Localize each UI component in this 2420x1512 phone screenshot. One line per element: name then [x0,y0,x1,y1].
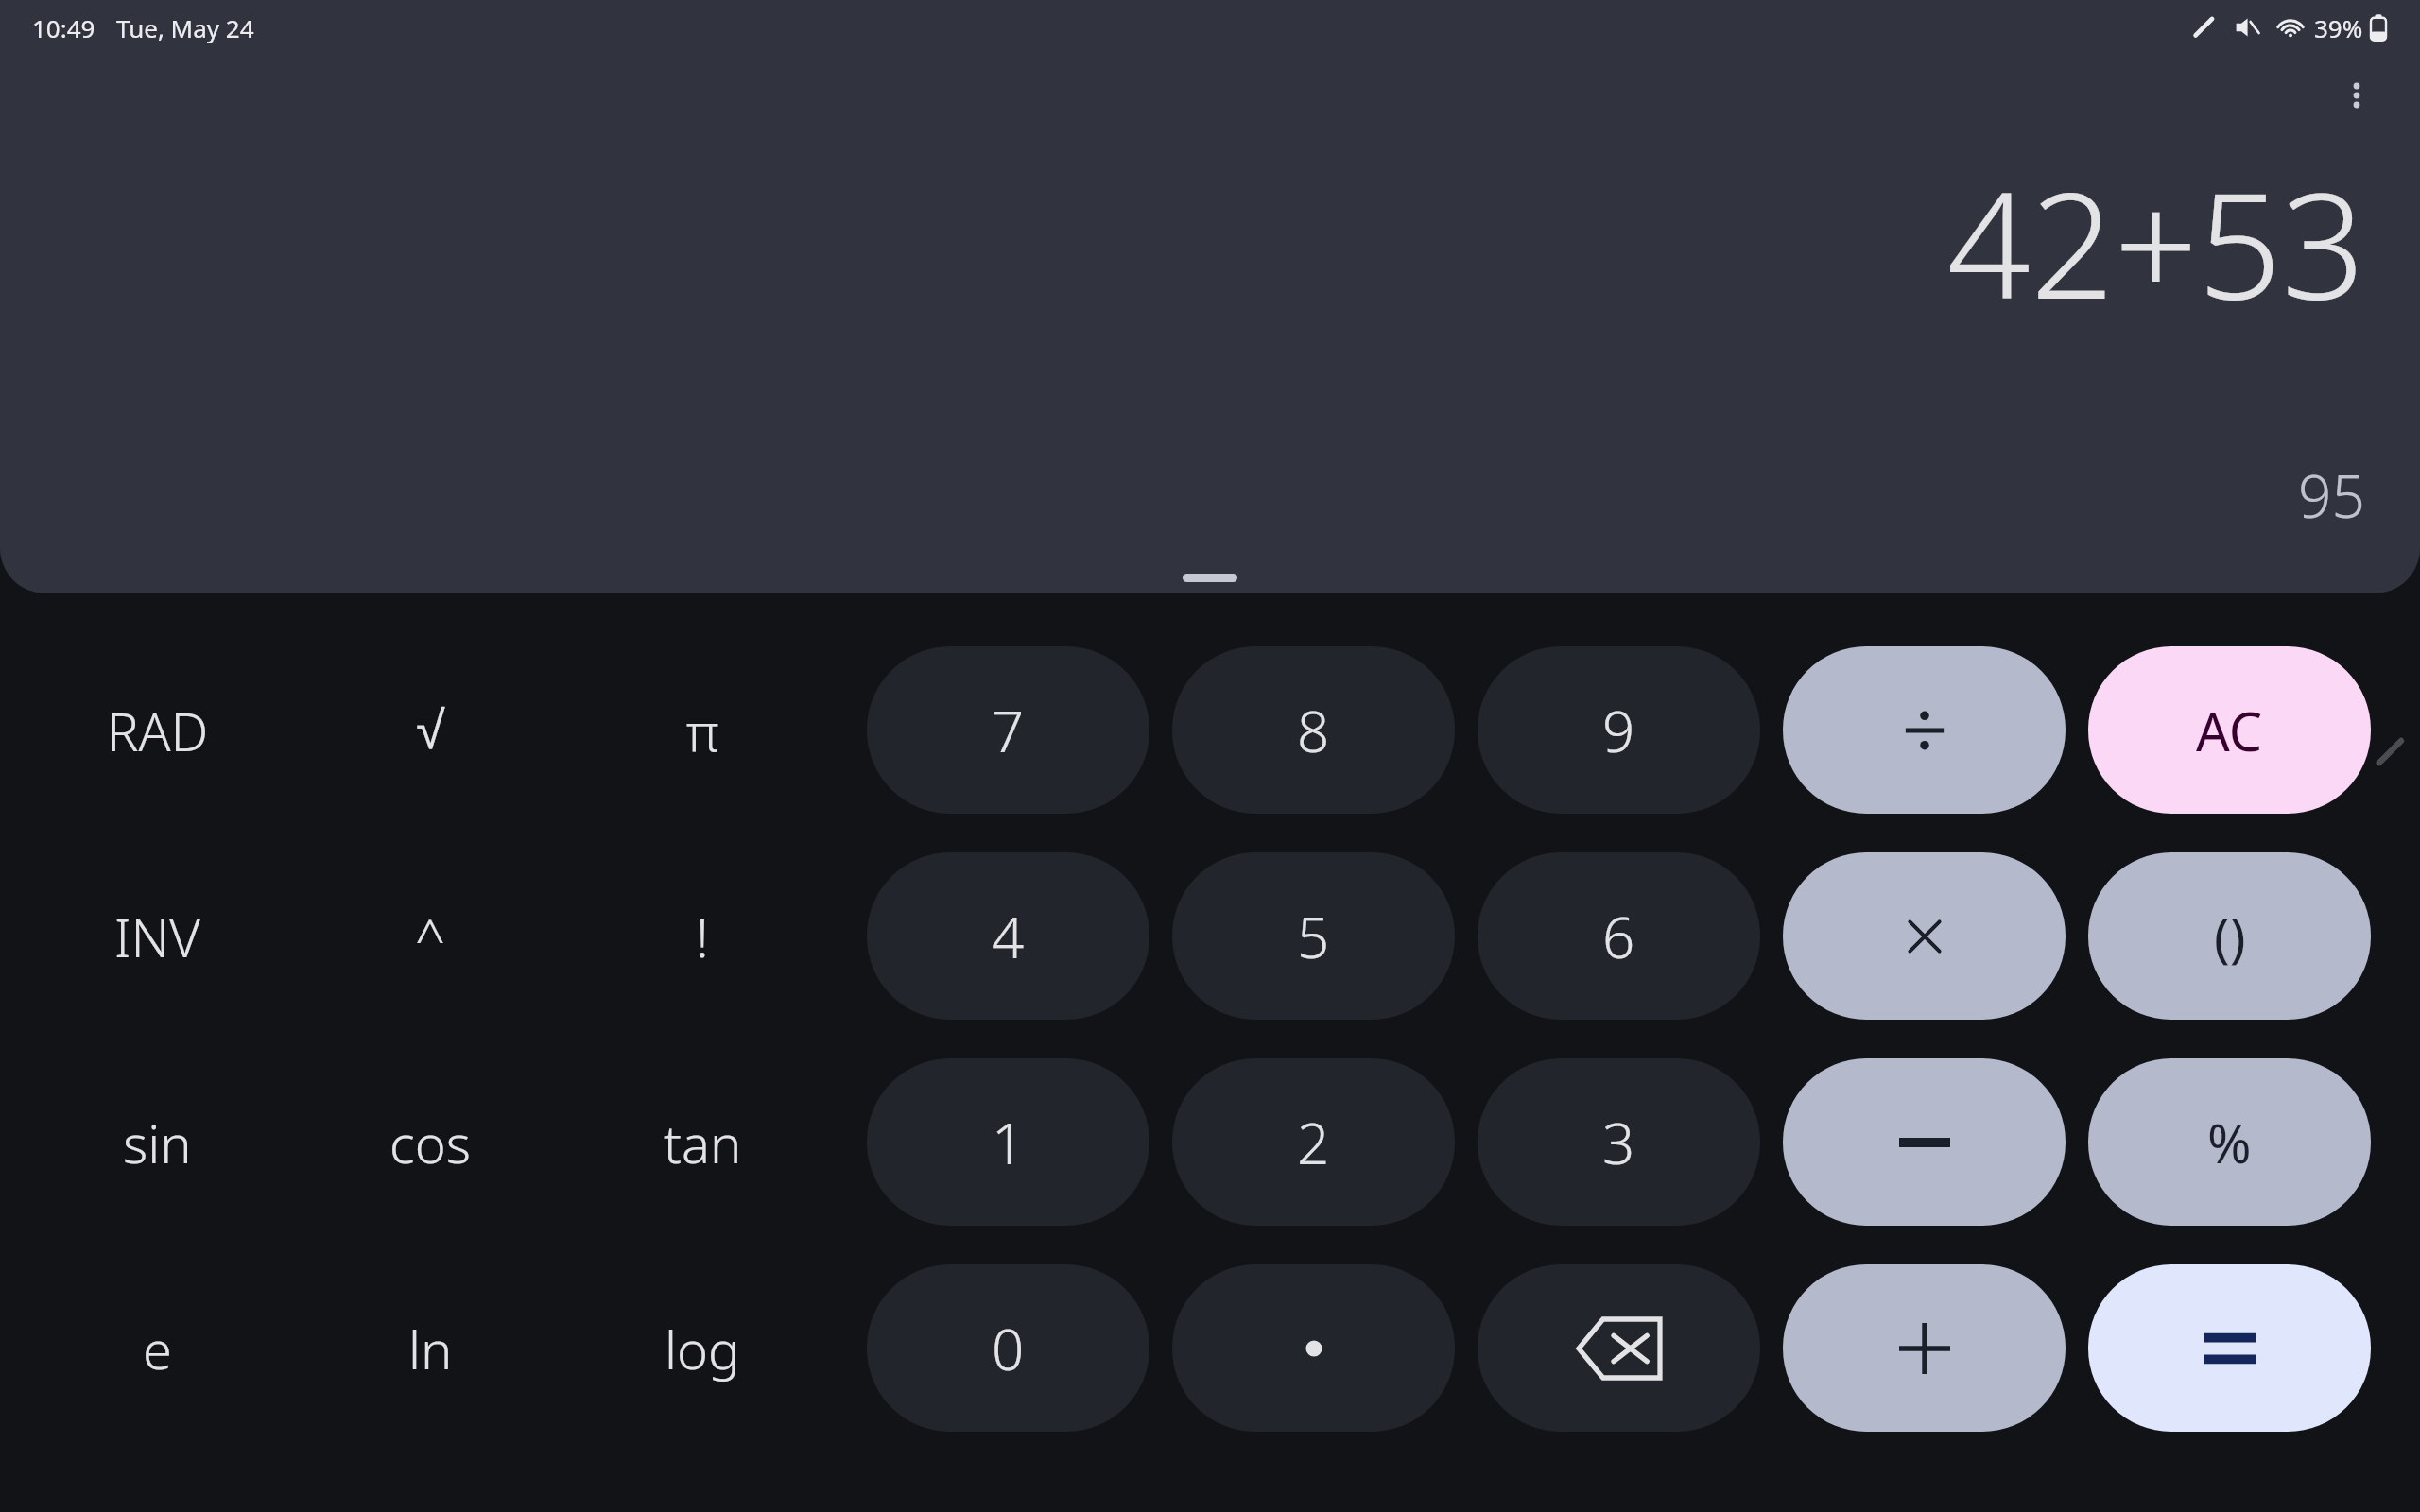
button[interactable]: ln [294,1264,566,1432]
button[interactable]: 5 [1172,852,1455,1020]
staticText: 8 [1297,692,1330,769]
staticText: √ [416,700,445,760]
staticText: () [2214,901,2246,972]
button[interactable]: 9 [1478,646,1760,814]
button[interactable]: () [2088,852,2371,1020]
staticText: 42+53 [1946,142,2365,341]
button[interactable]: Multiply [1783,852,2066,1020]
staticText: ln [408,1313,453,1384]
button[interactable]: π [566,646,838,814]
button[interactable]: 0 [867,1264,1149,1432]
staticText: INV [114,901,200,972]
button[interactable]: √ [294,646,566,814]
button[interactable]: ^ [294,852,566,1020]
staticText: 10:49 [32,11,95,44]
button[interactable] [1172,1264,1455,1432]
button[interactable]: More options [2320,59,2394,132]
button[interactable]: Equals [2088,1264,2371,1432]
staticText: 2 [1297,1104,1330,1181]
button[interactable]: Add [1783,1264,2066,1432]
staticText: e [143,1313,172,1384]
staticText: sin [123,1107,192,1178]
staticText: tan [664,1107,742,1178]
button[interactable]: 1 [867,1058,1149,1226]
button[interactable]: cos [294,1058,566,1226]
staticText: 5 [1297,898,1330,975]
button[interactable]: tan [566,1058,838,1226]
staticText: 9 [1602,692,1635,769]
staticText: 6 [1602,898,1635,975]
staticText: Tue, May 24 [116,11,254,44]
staticText: log [665,1313,740,1384]
button[interactable]: 3 [1478,1058,1760,1226]
staticText: AC [2196,695,2263,766]
staticText: 4 [992,898,1025,975]
staticText: 39% [2314,11,2363,44]
button[interactable]: log [566,1264,838,1432]
button[interactable]: Divide [1783,646,2066,814]
staticText: ! [696,901,709,972]
button[interactable]: 8 [1172,646,1455,814]
staticText: 0 [992,1310,1025,1387]
button[interactable]: % [2088,1058,2371,1226]
button[interactable]: 2 [1172,1058,1455,1226]
staticText: 95 [2298,455,2365,535]
button[interactable]: 7 [867,646,1149,814]
button[interactable]: Subtract [1783,1058,2066,1226]
button[interactable]: sin [21,1058,294,1226]
staticText: % [2207,1107,2252,1178]
button[interactable]: Stylus [2365,728,2414,777]
button[interactable]: INV [21,852,294,1020]
button[interactable]: e [21,1264,294,1432]
button[interactable]: RAD [21,646,294,814]
staticText: 1 [992,1104,1025,1181]
button[interactable]: 6 [1478,852,1760,1020]
button[interactable]: AC [2088,646,2371,814]
button[interactable]: Backspace [1478,1264,1760,1432]
staticText: ^ [415,901,445,972]
staticText: 7 [992,692,1025,769]
button[interactable]: 4 [867,852,1149,1020]
staticText: π [686,695,719,766]
staticText: 3 [1602,1104,1635,1181]
staticText: RAD [107,695,209,766]
staticText: cos [389,1107,471,1178]
button[interactable]: ! [566,852,838,1020]
